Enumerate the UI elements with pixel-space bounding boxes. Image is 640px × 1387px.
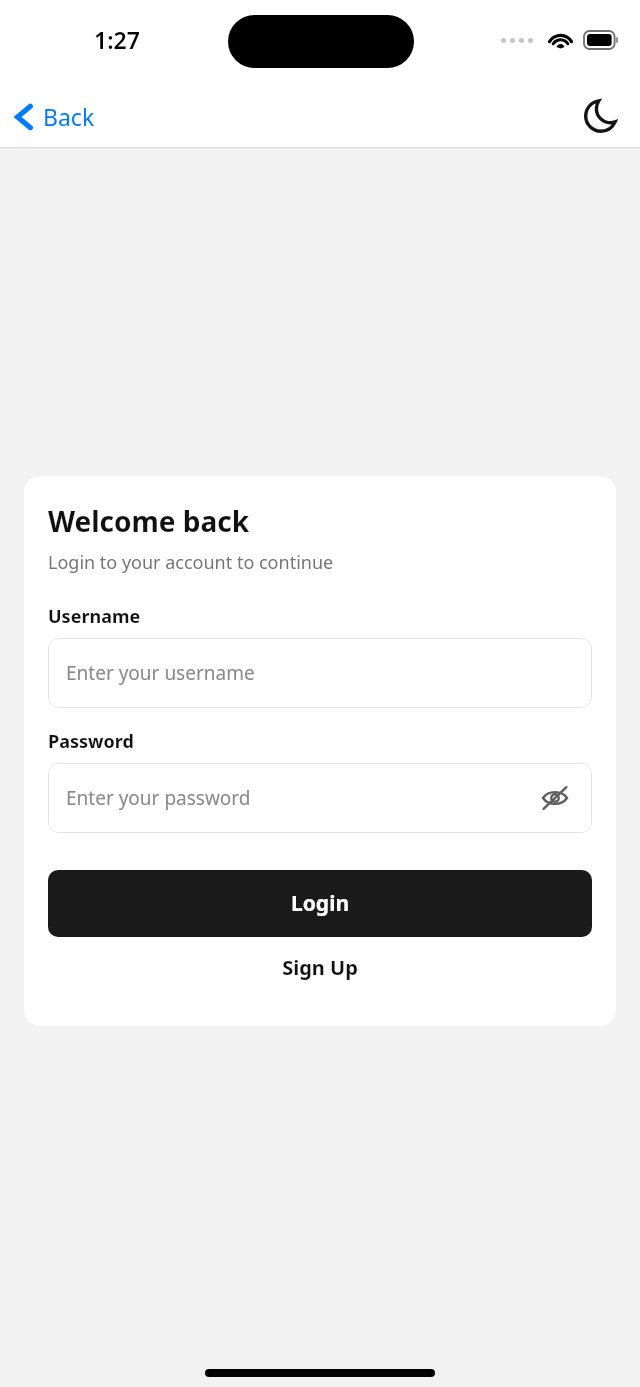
staticText: Welcome back (48, 502, 250, 540)
staticText: Username (48, 604, 141, 629)
staticText: 1:27 (94, 24, 140, 55)
button[interactable]: Show password (536, 779, 574, 817)
button[interactable]: Toggle dark mode (574, 89, 628, 143)
staticText: Login (291, 889, 350, 918)
staticText: Enter your username (66, 660, 255, 686)
button[interactable]: Back (0, 93, 109, 140)
staticText: Back (43, 101, 95, 132)
staticText: Login to your account to continue (48, 550, 334, 575)
staticText: Password (48, 729, 134, 754)
staticText: Sign Up (282, 954, 358, 981)
button[interactable]: Enter your password (48, 763, 592, 833)
button[interactable]: Login (48, 870, 592, 937)
button[interactable]: Enter your username (48, 638, 592, 708)
button[interactable]: Sign Up (48, 937, 592, 998)
staticText: Enter your password (66, 785, 251, 811)
